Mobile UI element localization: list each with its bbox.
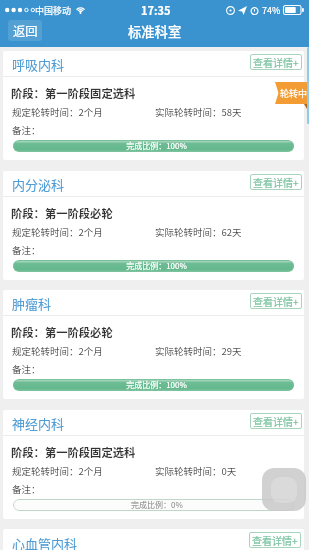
staticText: 备注： [12, 362, 41, 376]
staticText: 实际轮转时间：0天 [155, 464, 237, 478]
button[interactable]: Assistive touch [262, 468, 306, 511]
staticText: 神经内科 [12, 414, 65, 433]
staticText: 查看详情+ [253, 414, 299, 428]
staticText: 轮转中 [280, 87, 308, 100]
staticText: 查看详情+ [253, 55, 299, 69]
staticText: 阶段：第一阶段固定选科 [11, 85, 136, 101]
staticText: 规定轮转时间：2个月 [12, 105, 103, 119]
button[interactable]: 肿瘤科 [3, 290, 304, 399]
staticText: 74% [262, 4, 281, 17]
staticText: 中国移动 [35, 4, 72, 17]
staticText: 完成比例：100% [126, 260, 187, 272]
staticText: 规定轮转时间：2个月 [12, 464, 103, 478]
button[interactable]: 心血管内科 [3, 529, 304, 550]
staticText: 肿瘤科 [12, 294, 52, 313]
staticText: 查看详情+ [252, 533, 298, 547]
staticText: 备注： [12, 243, 41, 257]
staticText: 查看详情+ [253, 294, 299, 308]
staticText: 实际轮转时间：62天 [155, 225, 242, 239]
staticText: 心血管内科 [12, 534, 78, 550]
staticText: 标准科室 [128, 22, 182, 41]
staticText: 备注： [12, 123, 41, 137]
button[interactable]: 内分泌科 [3, 171, 304, 280]
staticText: 返回 [13, 22, 38, 40]
staticText: 完成比例：100% [126, 140, 187, 152]
staticText: 完成比例：100% [126, 379, 187, 391]
button[interactable]: 查看详情+ [250, 174, 302, 190]
staticText: 内分泌科 [12, 175, 65, 194]
button[interactable]: 查看详情+ [250, 54, 302, 70]
staticText: 实际轮转时间：58天 [155, 105, 242, 119]
button[interactable]: 呼吸内科 [3, 51, 304, 160]
staticText: 实际轮转时间：29天 [155, 344, 242, 358]
staticText: 规定轮转时间：2个月 [12, 225, 103, 239]
staticText: 阶段：第一阶段固定选科 [11, 444, 136, 460]
button[interactable]: 查看详情+ [250, 293, 302, 309]
staticText: 完成比例：0% [131, 499, 183, 511]
button[interactable]: 查看详情+ [250, 413, 302, 429]
staticText: 备注： [12, 482, 41, 496]
staticText: 呼吸内科 [12, 55, 65, 74]
button[interactable]: 查看详情+ [249, 532, 301, 548]
staticText: 查看详情+ [253, 175, 299, 189]
button[interactable]: 神经内科 [3, 410, 304, 519]
staticText: 17:35 [141, 2, 171, 18]
staticText: 规定轮转时间：2个月 [12, 344, 103, 358]
staticText: 阶段：第一阶段必轮 [11, 324, 113, 340]
button[interactable]: 返回 [8, 20, 42, 41]
staticText: 阶段：第一阶段必轮 [11, 205, 113, 221]
